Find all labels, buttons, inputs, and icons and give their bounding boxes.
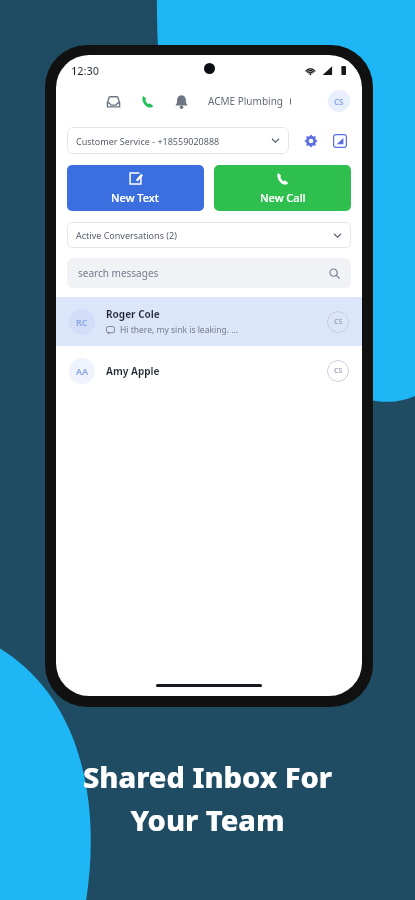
staticText: AA (76, 365, 89, 377)
staticText: Hi there, my sink is leaking. ... (120, 324, 238, 336)
button[interactable]: Customer Service - +18559020888 (67, 127, 289, 154)
staticText: 12:30 (71, 63, 100, 78)
staticText: ACME Plumbing (208, 94, 283, 108)
staticText: search messages (78, 266, 159, 280)
button[interactable]: Inbox (100, 88, 126, 114)
staticText: Amy Apple (106, 364, 160, 378)
button[interactable]: RC (56, 297, 362, 346)
staticText: Active Conversations (2) (76, 229, 177, 241)
button[interactable]: Calls (134, 88, 160, 114)
button[interactable]: CS (328, 90, 350, 112)
staticText: RC (76, 316, 88, 328)
button[interactable]: search messages (67, 258, 351, 288)
staticText: Customer Service - +18559020888 (76, 135, 220, 147)
button[interactable]: Reports (329, 130, 351, 152)
staticText: New Call (260, 190, 306, 205)
staticText: CS (334, 317, 343, 327)
button[interactable]: Notifications (168, 88, 194, 114)
button[interactable]: Active Conversations (2) (67, 222, 351, 248)
staticText: CS (334, 366, 343, 376)
staticText: Shared Inbox For (83, 757, 332, 796)
button[interactable]: New Call (214, 165, 351, 211)
staticText: Your Team (130, 800, 285, 839)
button[interactable]: ACME Plumbing (208, 94, 294, 108)
staticText: Roger Cole (106, 307, 160, 321)
button[interactable]: AA (56, 346, 362, 395)
button[interactable]: Settings (300, 130, 322, 152)
staticText: New Text (111, 190, 160, 205)
staticText: CS (334, 96, 344, 107)
button[interactable]: New Text (67, 165, 204, 211)
